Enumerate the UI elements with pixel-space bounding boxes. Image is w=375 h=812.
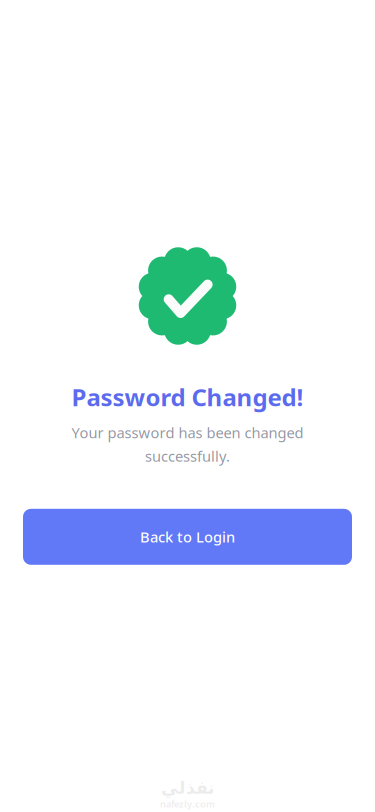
staticText: Back to Login [140, 527, 235, 547]
staticText: نفذلي [160, 778, 214, 798]
staticText: successfully. [145, 446, 230, 466]
staticText: nafezly.com [160, 798, 215, 810]
staticText: Your password has been changed [71, 423, 303, 442]
staticText: Password Changed! [71, 381, 303, 413]
button[interactable]: Back to Login [23, 509, 352, 565]
